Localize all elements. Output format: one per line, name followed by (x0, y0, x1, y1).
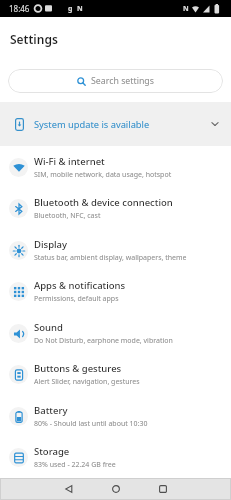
button[interactable]: System update is available (0, 102, 231, 146)
staticText: 18:46 (9, 3, 30, 14)
staticText: Buttons & gestures (34, 362, 122, 375)
button[interactable] (49, 478, 89, 500)
button[interactable] (96, 478, 136, 500)
button[interactable]: Storage (0, 437, 231, 478)
staticText: Wi-Fi & internet (34, 155, 105, 168)
staticText: Do Not Disturb, earphone mode, vibration (34, 336, 173, 346)
staticText: Bluetooth, NFC, cast (34, 211, 101, 221)
button[interactable]: Apps & notifications (0, 271, 231, 312)
button[interactable]: Battery (0, 395, 231, 437)
staticText: g (68, 4, 73, 14)
staticText: Permissions, default apps (34, 294, 119, 304)
button[interactable]: Bluetooth & device connection (0, 188, 231, 229)
button[interactable]: Display (0, 229, 231, 271)
staticText: Alert Slider, navigation, gestures (34, 377, 140, 387)
staticText: Sound (34, 321, 63, 334)
button[interactable]: Search settings (8, 69, 223, 93)
staticText: Display (34, 238, 68, 251)
staticText: Storage (34, 445, 70, 458)
staticText: Battery (34, 404, 68, 417)
staticText: Settings (10, 31, 58, 47)
staticText: N (183, 4, 189, 14)
button[interactable]: Buttons & gestures (0, 354, 231, 395)
staticText: 80% - Should last until about 10:30 (34, 419, 148, 429)
staticText: System update is available (34, 118, 150, 131)
button[interactable]: Wi-Fi & internet (0, 146, 231, 188)
staticText: Search settings (91, 75, 154, 87)
staticText: N (77, 4, 83, 14)
staticText: SIM, mobile network, data usage, hotspot (34, 170, 172, 180)
button[interactable]: Sound (0, 312, 231, 354)
staticText: Apps & notifications (34, 279, 126, 292)
staticText: 83% used - 22.24 GB free (34, 460, 116, 470)
staticText: Bluetooth & device connection (34, 196, 173, 209)
staticText: Status bar, ambient display, wallpapers,… (34, 253, 187, 263)
button[interactable] (143, 478, 183, 500)
